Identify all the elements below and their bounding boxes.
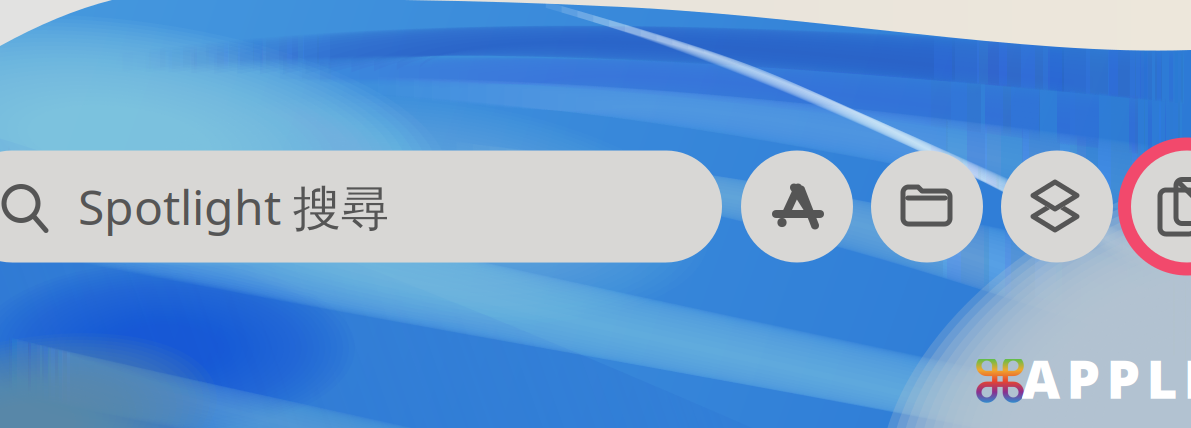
button[interactable]: App Store — [728, 137, 866, 275]
button[interactable]: Shortcuts — [988, 137, 1126, 275]
staticText: APPLE — [1021, 343, 1191, 413]
button[interactable]: Documents — [1118, 137, 1191, 275]
staticText: Spotlight 搜尋 — [78, 174, 389, 238]
button[interactable]: Files — [858, 137, 996, 275]
button[interactable]: Spotlight 搜尋 — [0, 150, 722, 262]
